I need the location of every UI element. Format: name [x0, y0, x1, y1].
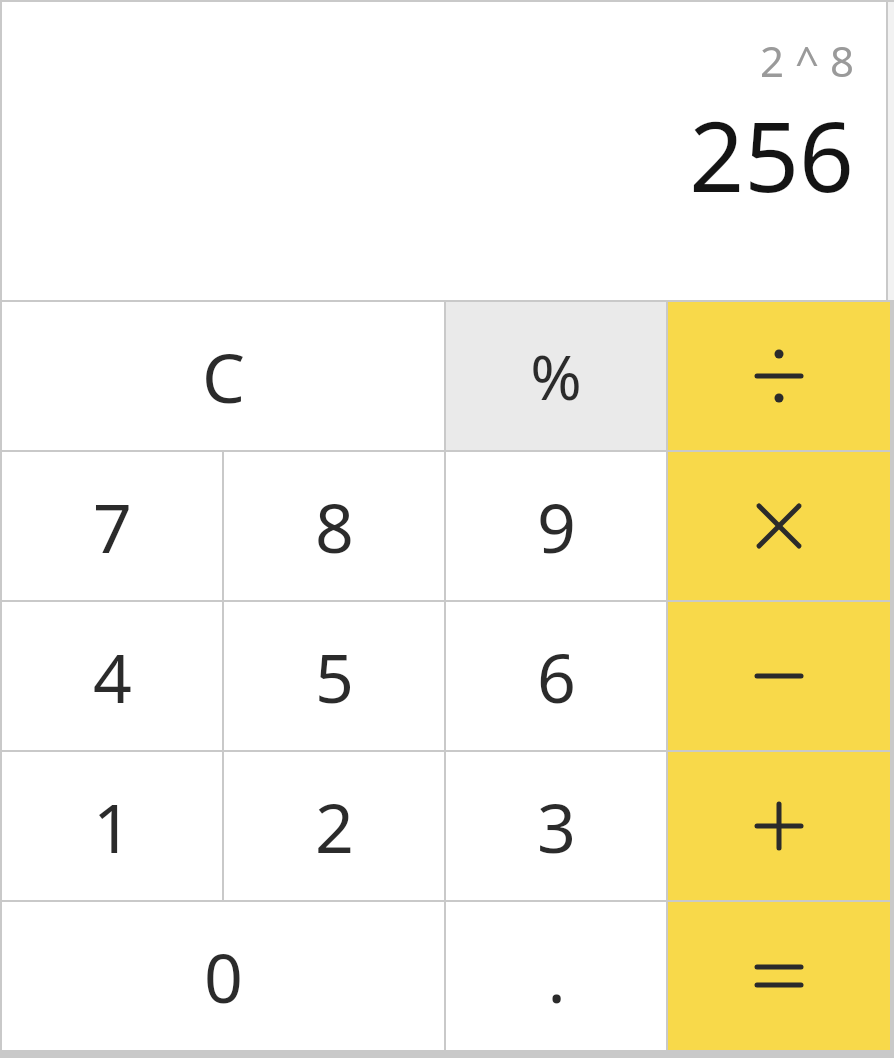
button[interactable]: Equals — [668, 902, 890, 1050]
staticText: 7 — [93, 480, 132, 573]
button[interactable]: % — [446, 302, 666, 450]
staticText: 2 ^ 8 — [760, 32, 854, 89]
staticText: 9 — [537, 480, 576, 573]
staticText: 4 — [93, 630, 132, 723]
button[interactable]: 2 — [224, 752, 444, 900]
button[interactable]: 8 — [224, 452, 444, 600]
button[interactable]: Add — [668, 752, 890, 900]
button[interactable]: 3 — [446, 752, 666, 900]
staticText: % — [530, 334, 582, 418]
staticText: 6 — [537, 630, 576, 723]
button[interactable]: Multiply — [668, 452, 890, 600]
button[interactable]: . — [446, 902, 666, 1050]
button[interactable]: 7 — [2, 452, 222, 600]
staticText: 8 — [315, 480, 354, 573]
button[interactable]: 9 — [446, 452, 666, 600]
button[interactable]: 4 — [2, 602, 222, 750]
staticText: C — [202, 330, 245, 423]
staticText: 1 — [93, 780, 132, 873]
staticText: . — [547, 930, 566, 1023]
staticText: 3 — [537, 780, 576, 873]
button[interactable]: C — [2, 302, 444, 450]
staticText: 256 — [689, 89, 854, 220]
button[interactable]: 5 — [224, 602, 444, 750]
button[interactable]: 6 — [446, 602, 666, 750]
staticText: 2 — [315, 780, 354, 873]
button[interactable]: Divide — [668, 302, 890, 450]
button[interactable]: 0 — [2, 902, 444, 1050]
button[interactable]: 1 — [2, 752, 222, 900]
staticText: 5 — [315, 630, 354, 723]
staticText: 0 — [204, 930, 243, 1023]
button[interactable]: Subtract — [668, 602, 890, 750]
